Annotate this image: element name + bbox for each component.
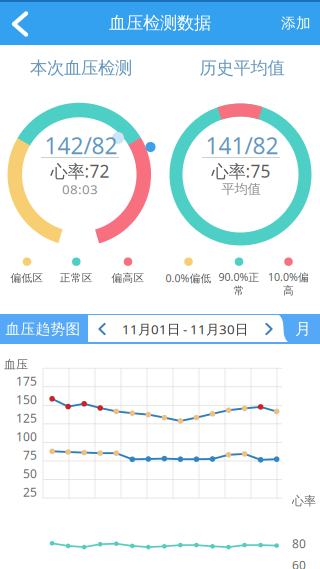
staticText: 历史平均值 [199, 57, 284, 79]
staticText: 偏高区 [111, 271, 144, 284]
button[interactable]: Previous period [91, 316, 113, 341]
staticText: 常 [233, 284, 244, 297]
button[interactable]: Back [0, 3, 42, 45]
staticText: 本次血压检测 [30, 57, 132, 79]
button[interactable]: Next period [258, 316, 280, 341]
staticText: 高 [283, 284, 294, 297]
staticText: 100 [16, 429, 37, 444]
staticText: 月 [295, 319, 311, 339]
staticText: 75 [23, 447, 37, 463]
staticText: 0.0%偏低 [165, 271, 211, 285]
staticText: 心率:72 [50, 159, 109, 182]
staticText: 150 [16, 392, 37, 407]
staticText: 正常区 [60, 271, 93, 284]
staticText: 175 [16, 373, 37, 389]
staticText: 60 [292, 557, 306, 569]
staticText: 血压趋势图 [5, 320, 80, 338]
button[interactable]: 月 [288, 312, 318, 346]
staticText: 141/82 [205, 130, 278, 160]
staticText: 25 [23, 484, 37, 500]
staticText: 心率:75 [211, 159, 270, 182]
staticText: 10.0%偏 [268, 270, 309, 284]
staticText: 125 [16, 410, 37, 426]
staticText: 平均值 [221, 181, 260, 197]
staticText: 心率 [292, 494, 316, 508]
staticText: 血压检测数据 [109, 12, 211, 34]
button[interactable]: 添加 [272, 5, 320, 41]
staticText: 添加 [281, 14, 311, 32]
staticText: 11月01日 - 11月30日 [122, 320, 248, 338]
staticText: 08:03 [62, 180, 98, 198]
staticText: 80 [292, 535, 306, 551]
staticText: 142/82 [44, 130, 117, 160]
staticText: 偏低区 [10, 271, 43, 284]
staticText: 90.0%正 [218, 270, 259, 284]
staticText: 50 [23, 466, 37, 482]
staticText: 血压 [4, 357, 28, 372]
